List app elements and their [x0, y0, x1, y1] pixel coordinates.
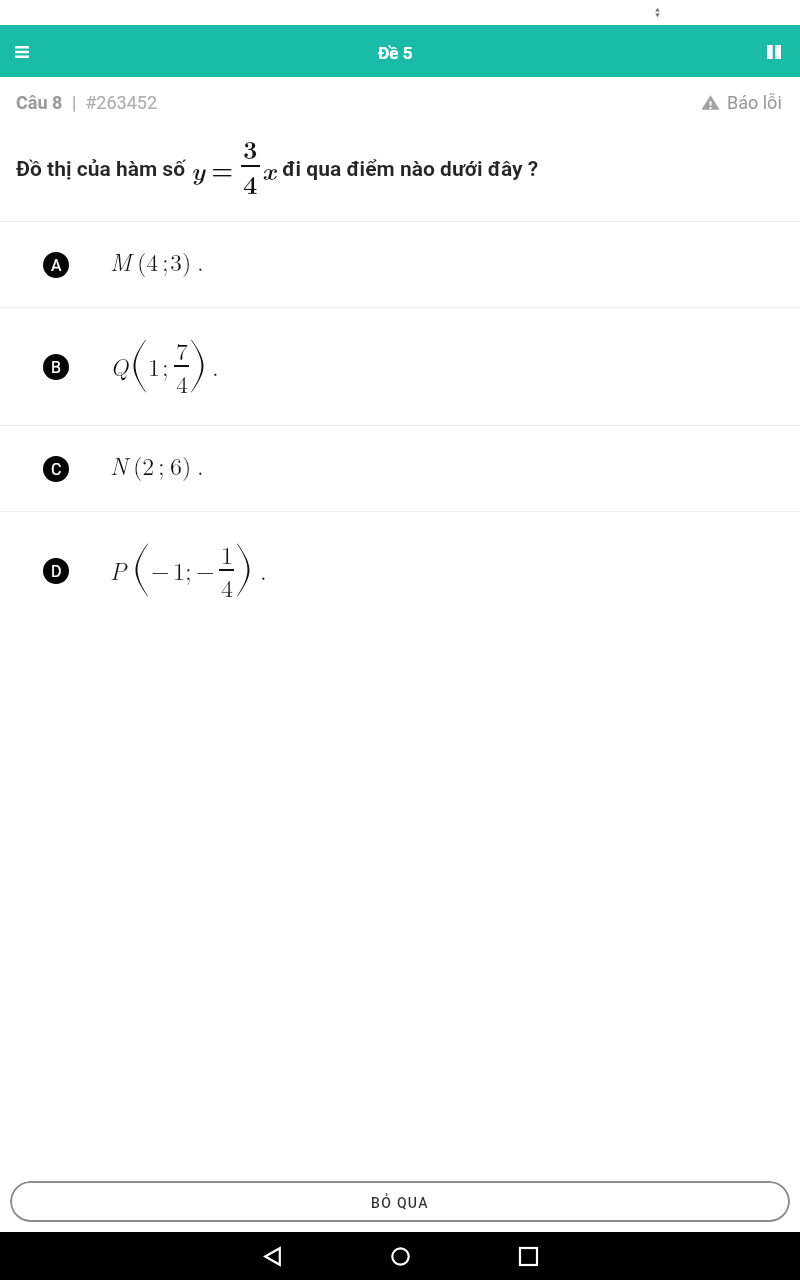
staticText: y	[191, 151, 206, 187]
staticText: 3	[243, 131, 258, 167]
button[interactable]: Home	[376, 1232, 424, 1280]
staticText: Q	[110, 349, 129, 383]
staticText: A	[51, 256, 62, 275]
button[interactable]: B	[0, 308, 800, 425]
staticText: 3)	[170, 244, 192, 278]
staticText: N	[110, 448, 128, 482]
button[interactable]: Back	[248, 1232, 296, 1280]
staticText: B	[51, 358, 61, 377]
staticText: .	[212, 349, 219, 383]
staticText: Báo lỗi	[727, 92, 782, 113]
staticText: ;	[162, 244, 169, 278]
staticText: −	[196, 553, 215, 587]
staticText: =	[211, 151, 234, 187]
staticText: 4	[243, 166, 258, 202]
staticText: −	[151, 553, 170, 587]
staticText: D	[51, 562, 62, 581]
staticText: (4	[137, 244, 159, 278]
staticText: x	[262, 151, 277, 187]
staticText: Đề 5	[378, 43, 413, 63]
staticText: 4	[221, 570, 233, 604]
button[interactable]: Recents	[504, 1232, 552, 1280]
button[interactable]: A	[0, 222, 800, 307]
staticText: .	[197, 244, 204, 278]
staticText: (2	[133, 448, 155, 482]
staticText: BỎ QUA	[371, 1195, 429, 1211]
staticText: 1	[221, 537, 233, 571]
button[interactable]: D	[0, 512, 800, 630]
staticText: 7	[176, 333, 188, 367]
staticText: ;	[162, 349, 169, 383]
staticText: .	[197, 448, 204, 482]
staticText: C	[51, 460, 62, 479]
button[interactable]: Pause	[748, 25, 800, 77]
staticText: đi qua điểm nào dưới đây ?	[277, 157, 539, 182]
staticText: ;	[158, 448, 165, 482]
button[interactable]: BỎ QUA	[10, 1181, 790, 1222]
staticText: 1;	[173, 553, 192, 587]
staticText: 6)	[170, 448, 192, 482]
button[interactable]: Menu	[0, 25, 52, 77]
staticText: 4	[176, 366, 188, 400]
button[interactable]: C	[0, 426, 800, 511]
staticText: | #263452	[63, 92, 158, 113]
staticText: .	[260, 553, 267, 587]
staticText: Đồ thị của hàm số	[16, 157, 191, 182]
button[interactable]: Báo lỗi	[687, 86, 800, 119]
staticText: 1	[148, 349, 160, 383]
staticText: M	[110, 244, 132, 278]
staticText: Câu 8	[16, 92, 63, 113]
staticText: P	[110, 553, 127, 587]
